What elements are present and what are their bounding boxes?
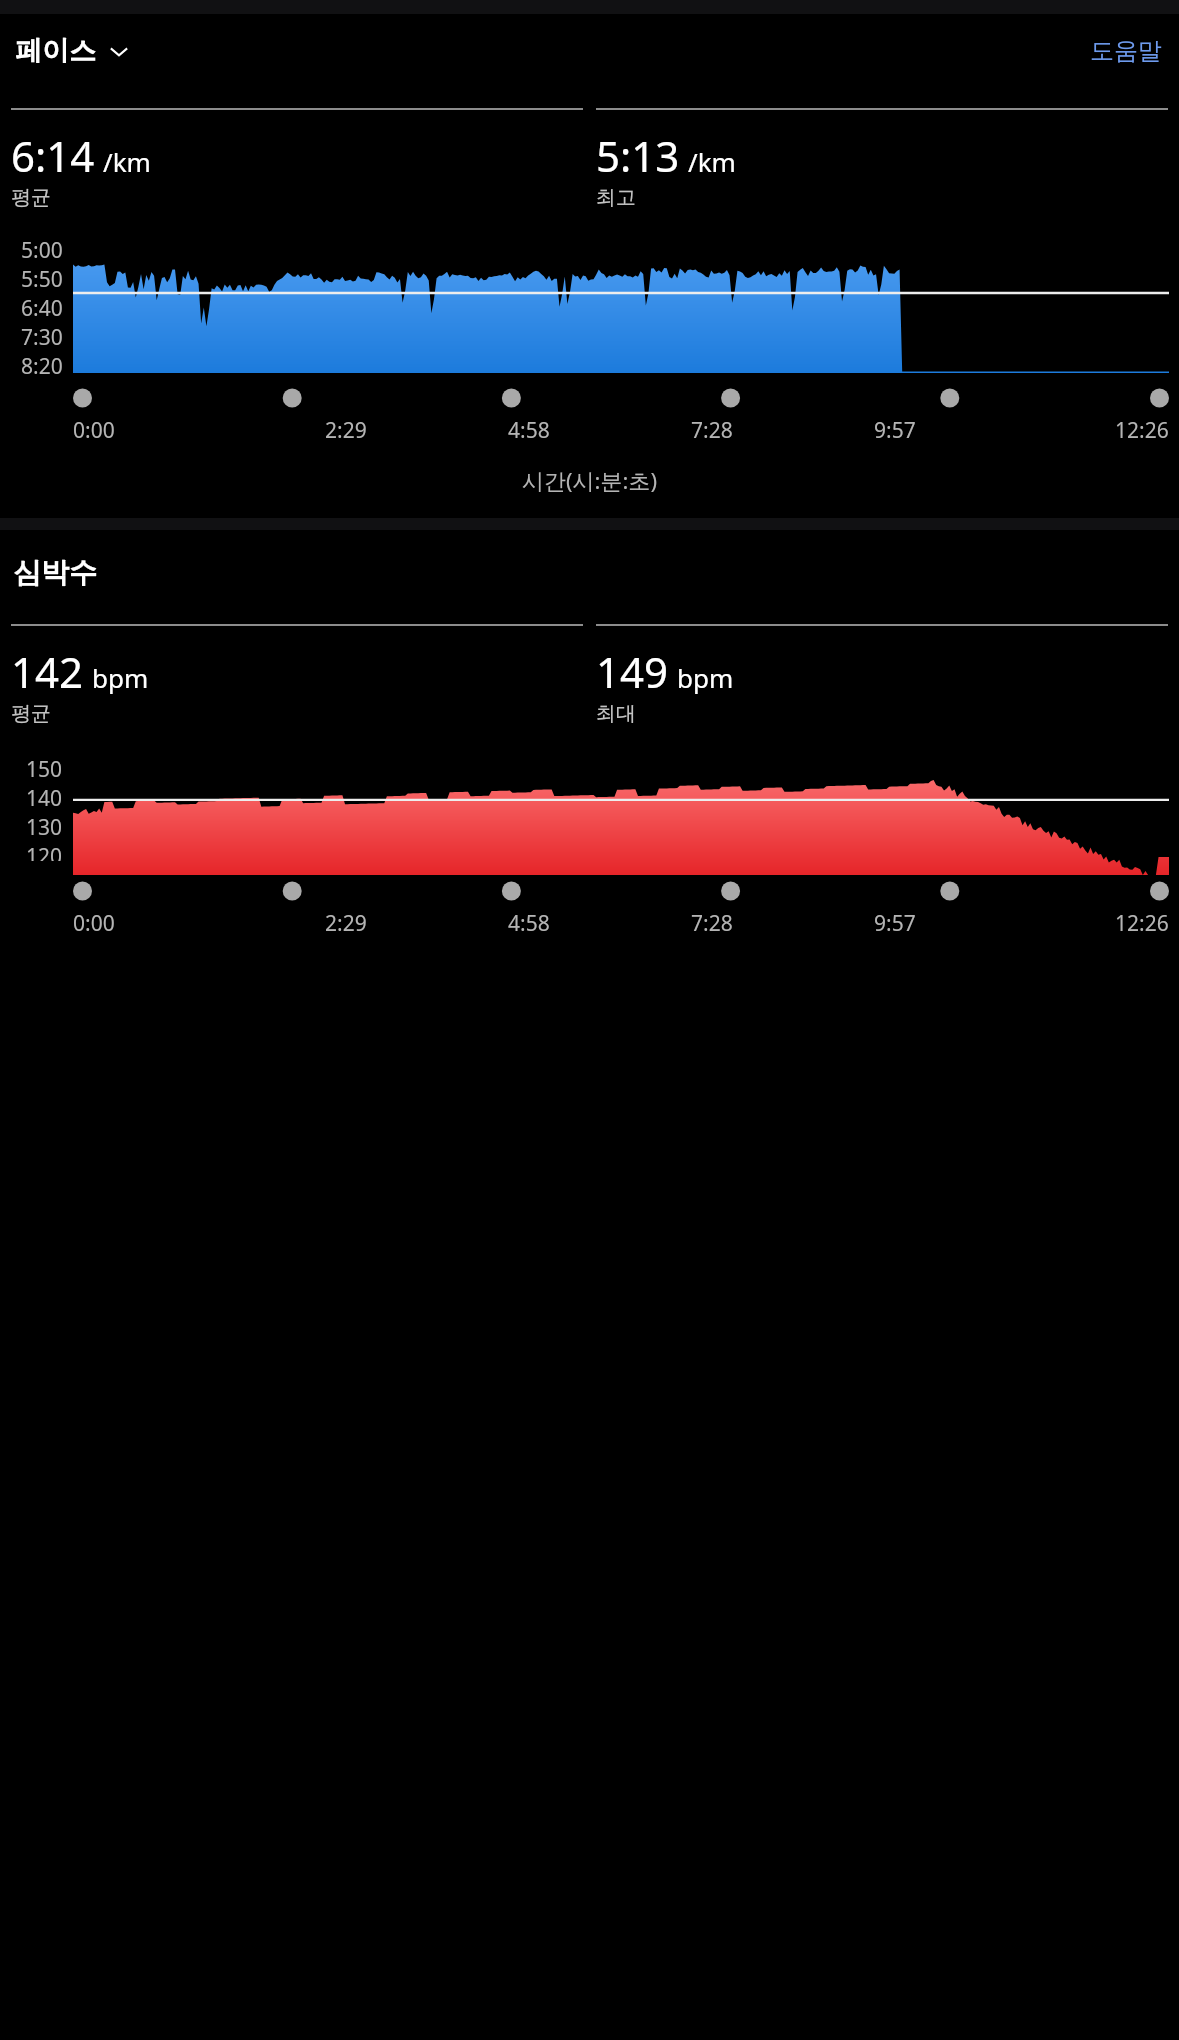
staticText: 6:14 [11, 127, 95, 184]
staticText: 7:28 [691, 416, 733, 445]
staticText: 평균 [11, 701, 51, 726]
staticText: 최고 [596, 185, 636, 210]
staticText: 140 [26, 784, 63, 813]
staticText: 2:29 [325, 416, 367, 445]
staticText: 150 [26, 755, 63, 784]
staticText: 6:40 [21, 294, 63, 323]
staticText: 0:00 [73, 416, 115, 445]
staticText: 평균 [11, 185, 51, 210]
staticText: 4:58 [508, 909, 550, 938]
staticText: 142 [11, 643, 84, 700]
staticText: 120 [26, 842, 63, 861]
button[interactable]: 페이스 [11, 26, 135, 76]
staticText: bpm [677, 660, 734, 695]
staticText: 9:57 [874, 909, 916, 938]
staticText: 12:26 [1115, 909, 1169, 938]
staticText: 12:26 [1115, 416, 1169, 445]
staticText: 심박수 [13, 555, 97, 590]
staticText: 시간(시:분:초) [522, 465, 657, 495]
staticText: 도움말 [1090, 36, 1162, 66]
other: Change metric [107, 39, 131, 63]
staticText: 최대 [596, 701, 636, 726]
staticText: 5:50 [21, 265, 63, 294]
staticText: 149 [596, 643, 669, 700]
button[interactable]: 도움말 [1084, 28, 1168, 74]
staticText: 5:00 [21, 236, 63, 265]
staticText: 9:57 [874, 416, 916, 445]
staticText: bpm [92, 660, 149, 695]
staticText: /km [688, 144, 736, 179]
staticText: /km [103, 144, 151, 179]
staticText: 130 [26, 813, 63, 842]
staticText: 페이스 [15, 34, 96, 68]
staticText: 0:00 [73, 909, 115, 938]
staticText: 4:58 [508, 416, 550, 445]
staticText: 2:29 [325, 909, 367, 938]
staticText: 7:30 [21, 323, 63, 352]
staticText: 5:13 [596, 127, 680, 184]
staticText: 7:28 [691, 909, 733, 938]
staticText: 8:20 [21, 352, 63, 380]
